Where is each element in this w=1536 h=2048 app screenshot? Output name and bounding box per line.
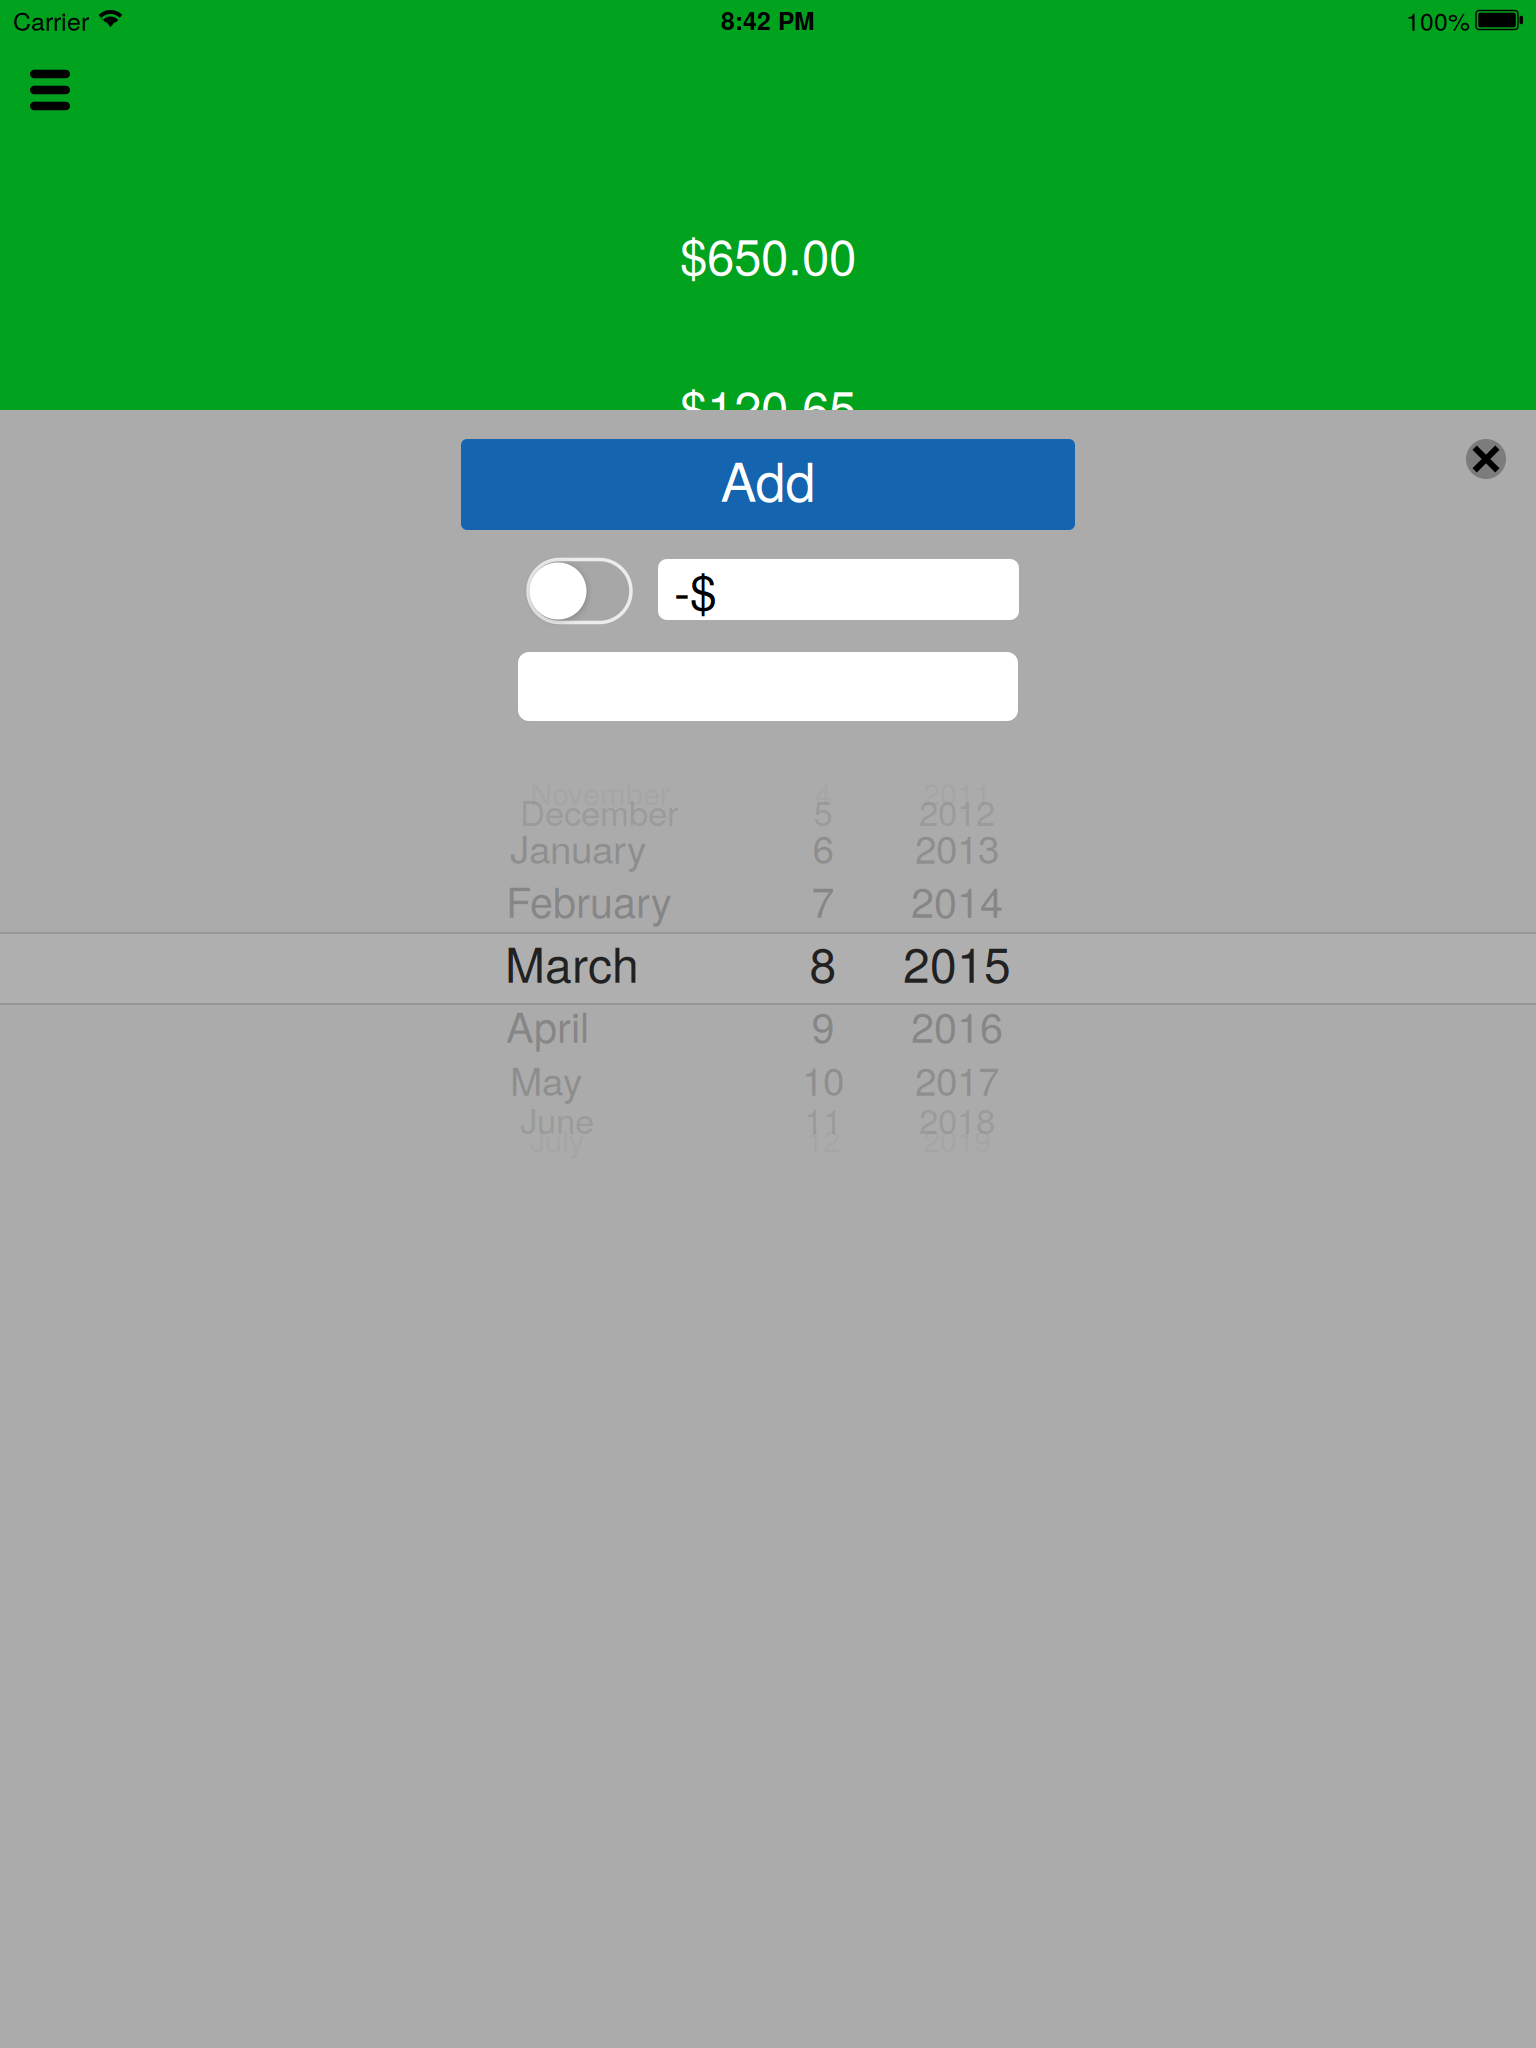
staticText: Carrier — [13, 2, 89, 38]
staticText: 2016 — [911, 995, 1003, 1055]
staticText: 4 — [814, 770, 831, 814]
staticText: 2019 — [923, 1117, 991, 1161]
staticText: 10 — [802, 1051, 844, 1107]
staticText: April — [506, 995, 589, 1055]
staticText: December — [520, 786, 679, 836]
button[interactable]: Menu — [8, 50, 92, 130]
staticText: Add — [720, 440, 815, 517]
staticText: May — [510, 1051, 582, 1107]
staticText: 2017 — [915, 1051, 999, 1107]
staticText: February — [506, 870, 672, 930]
button[interactable]: Close — [1449, 422, 1523, 496]
staticText: November — [530, 770, 670, 814]
staticText: 5 — [813, 786, 832, 836]
staticText: June — [520, 1094, 594, 1144]
staticText: July — [530, 1117, 584, 1161]
staticText: 2015 — [903, 928, 1011, 996]
button[interactable]: -$ — [658, 559, 1019, 620]
staticText: 8 — [809, 928, 836, 996]
staticText: 100% — [1406, 2, 1470, 38]
button[interactable]: Income or expense — [528, 559, 631, 622]
staticText: 9 — [811, 995, 834, 1055]
staticText: -$ — [674, 555, 717, 624]
staticText: March — [505, 928, 639, 996]
staticText: 11 — [804, 1094, 842, 1144]
staticText: January — [510, 819, 646, 875]
staticText: 2011 — [923, 770, 991, 814]
staticText: 2018 — [919, 1094, 995, 1144]
staticText: 7 — [811, 870, 834, 930]
staticText: 2013 — [915, 819, 999, 875]
staticText: 12 — [806, 1117, 840, 1161]
button[interactable]: Add — [461, 439, 1075, 530]
staticText: 2012 — [919, 786, 995, 836]
button[interactable]: Note — [518, 652, 1018, 721]
staticText: $650.00 — [680, 219, 856, 289]
staticText: 8:42 PM — [721, 2, 815, 38]
staticText: 2014 — [911, 870, 1003, 930]
staticText: $120.65 — [680, 371, 856, 441]
staticText: 6 — [812, 819, 833, 875]
